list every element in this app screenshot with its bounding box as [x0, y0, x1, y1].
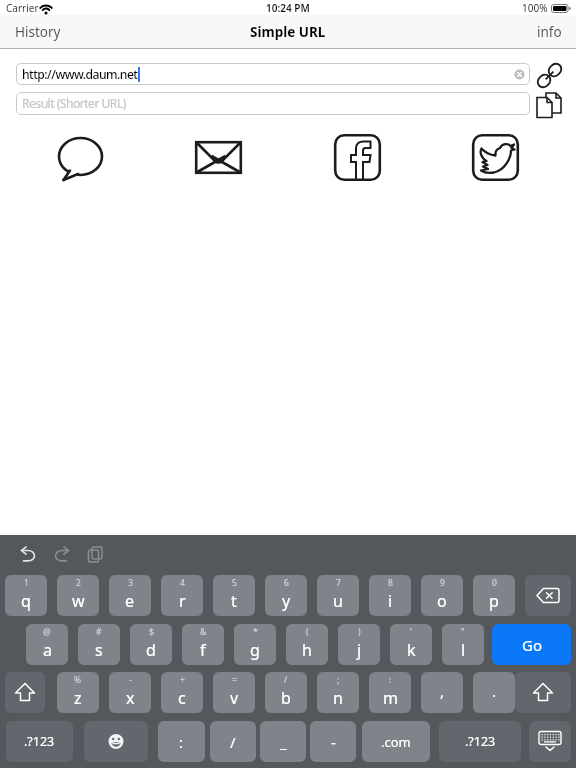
- staticText: +: [180, 674, 185, 686]
- staticText: 0: [492, 577, 497, 589]
- button[interactable]: 6: [265, 575, 307, 616]
- staticText: 9: [440, 577, 445, 589]
- staticText: e: [125, 590, 135, 612]
- button[interactable]: [536, 92, 564, 118]
- staticText: #: [96, 626, 102, 638]
- button[interactable]: ": [442, 624, 484, 665]
- staticText: c: [178, 687, 186, 709]
- button[interactable]: 9: [421, 575, 463, 616]
- button[interactable]: ,: [421, 672, 463, 713]
- button[interactable]: =: [213, 672, 255, 713]
- staticText: 1: [24, 577, 29, 589]
- staticText: *: [253, 626, 258, 638]
- staticText: p: [489, 590, 499, 612]
- staticText: ': [410, 626, 412, 638]
- staticText: $: [149, 626, 154, 638]
- staticText: =: [232, 674, 237, 686]
- button[interactable]: [536, 62, 563, 89]
- button[interactable]: *: [234, 624, 276, 665]
- button[interactable]: [5, 672, 45, 713]
- staticText: f: [200, 639, 206, 661]
- staticText: 6: [284, 577, 289, 589]
- button[interactable]: ': [390, 624, 432, 665]
- staticText: 2: [76, 577, 81, 589]
- staticText: x: [126, 687, 135, 709]
- button[interactable]: 4: [161, 575, 203, 616]
- button[interactable]: [87, 546, 104, 563]
- staticText: j: [357, 639, 362, 661]
- button[interactable]: [334, 134, 381, 181]
- staticText: h: [302, 639, 312, 661]
- button[interactable]: $: [130, 624, 172, 665]
- button[interactable]: Result (Shorter URL): [16, 92, 530, 115]
- staticText: Go: [522, 635, 542, 655]
- button[interactable]: .?123: [6, 721, 73, 762]
- button[interactable]: [525, 575, 571, 616]
- button[interactable]: [84, 721, 148, 762]
- button[interactable]: [472, 134, 519, 181]
- button[interactable]: http://www.daum.net: [16, 63, 530, 85]
- staticText: -: [129, 674, 132, 686]
- button[interactable]: +: [161, 672, 203, 713]
- staticText: /: [284, 674, 288, 686]
- button[interactable]: #: [78, 624, 120, 665]
- button[interactable]: -: [109, 672, 151, 713]
- staticText: (: [306, 626, 309, 638]
- staticText: s: [95, 639, 103, 661]
- button[interactable]: /: [265, 672, 307, 713]
- staticText: 8: [388, 577, 393, 589]
- staticText: :: [389, 674, 392, 686]
- staticText: ,: [440, 681, 445, 701]
- staticText: r: [179, 590, 186, 612]
- button[interactable]: 0: [473, 575, 515, 616]
- button[interactable]: 7: [317, 575, 359, 616]
- button[interactable]: (: [286, 624, 328, 665]
- staticText: 100%: [522, 1, 548, 15]
- staticText: Result (Shorter URL): [22, 95, 126, 112]
- button[interactable]: 2: [57, 575, 99, 616]
- staticText: n: [333, 687, 343, 709]
- button[interactable]: [195, 141, 242, 174]
- staticText: .com: [381, 733, 411, 751]
- button[interactable]: 3: [109, 575, 151, 616]
- staticText: g: [250, 639, 260, 661]
- staticText: 7: [336, 577, 341, 589]
- staticText: Simple URL: [250, 23, 326, 41]
- button[interactable]: /: [210, 721, 256, 762]
- button[interactable]: [529, 721, 571, 762]
- button[interactable]: :: [158, 721, 205, 762]
- button[interactable]: 1: [5, 575, 47, 616]
- button[interactable]: 5: [213, 575, 255, 616]
- button[interactable]: .com: [362, 721, 430, 762]
- button[interactable]: [53, 546, 72, 563]
- staticText: q: [21, 590, 31, 612]
- button[interactable]: .?123: [439, 721, 521, 762]
- button[interactable]: ;: [317, 672, 359, 713]
- button[interactable]: %: [57, 672, 99, 713]
- button[interactable]: 8: [369, 575, 411, 616]
- button[interactable]: @: [26, 624, 68, 665]
- staticText: y: [282, 590, 291, 612]
- staticText: .: [492, 681, 497, 701]
- button[interactable]: Go: [492, 624, 571, 665]
- staticText: 10:24 PM: [266, 1, 310, 15]
- button[interactable]: History: [15, 15, 75, 48]
- staticText: b: [281, 687, 291, 709]
- staticText: 4: [180, 577, 185, 589]
- button[interactable]: [57, 136, 103, 182]
- staticText: 3: [128, 577, 133, 589]
- button[interactable]: info: [516, 15, 562, 48]
- button[interactable]: _: [260, 721, 306, 762]
- button[interactable]: .: [473, 672, 515, 713]
- staticText: .?123: [465, 733, 496, 750]
- button[interactable]: -: [310, 721, 356, 762]
- staticText: u: [333, 590, 343, 612]
- button[interactable]: &: [182, 624, 224, 665]
- button[interactable]: [515, 672, 571, 713]
- staticText: _: [280, 732, 287, 752]
- staticText: o: [437, 590, 447, 612]
- staticText: @: [43, 626, 51, 638]
- button[interactable]: ): [338, 624, 380, 665]
- button[interactable]: [18, 546, 37, 563]
- button[interactable]: :: [369, 672, 411, 713]
